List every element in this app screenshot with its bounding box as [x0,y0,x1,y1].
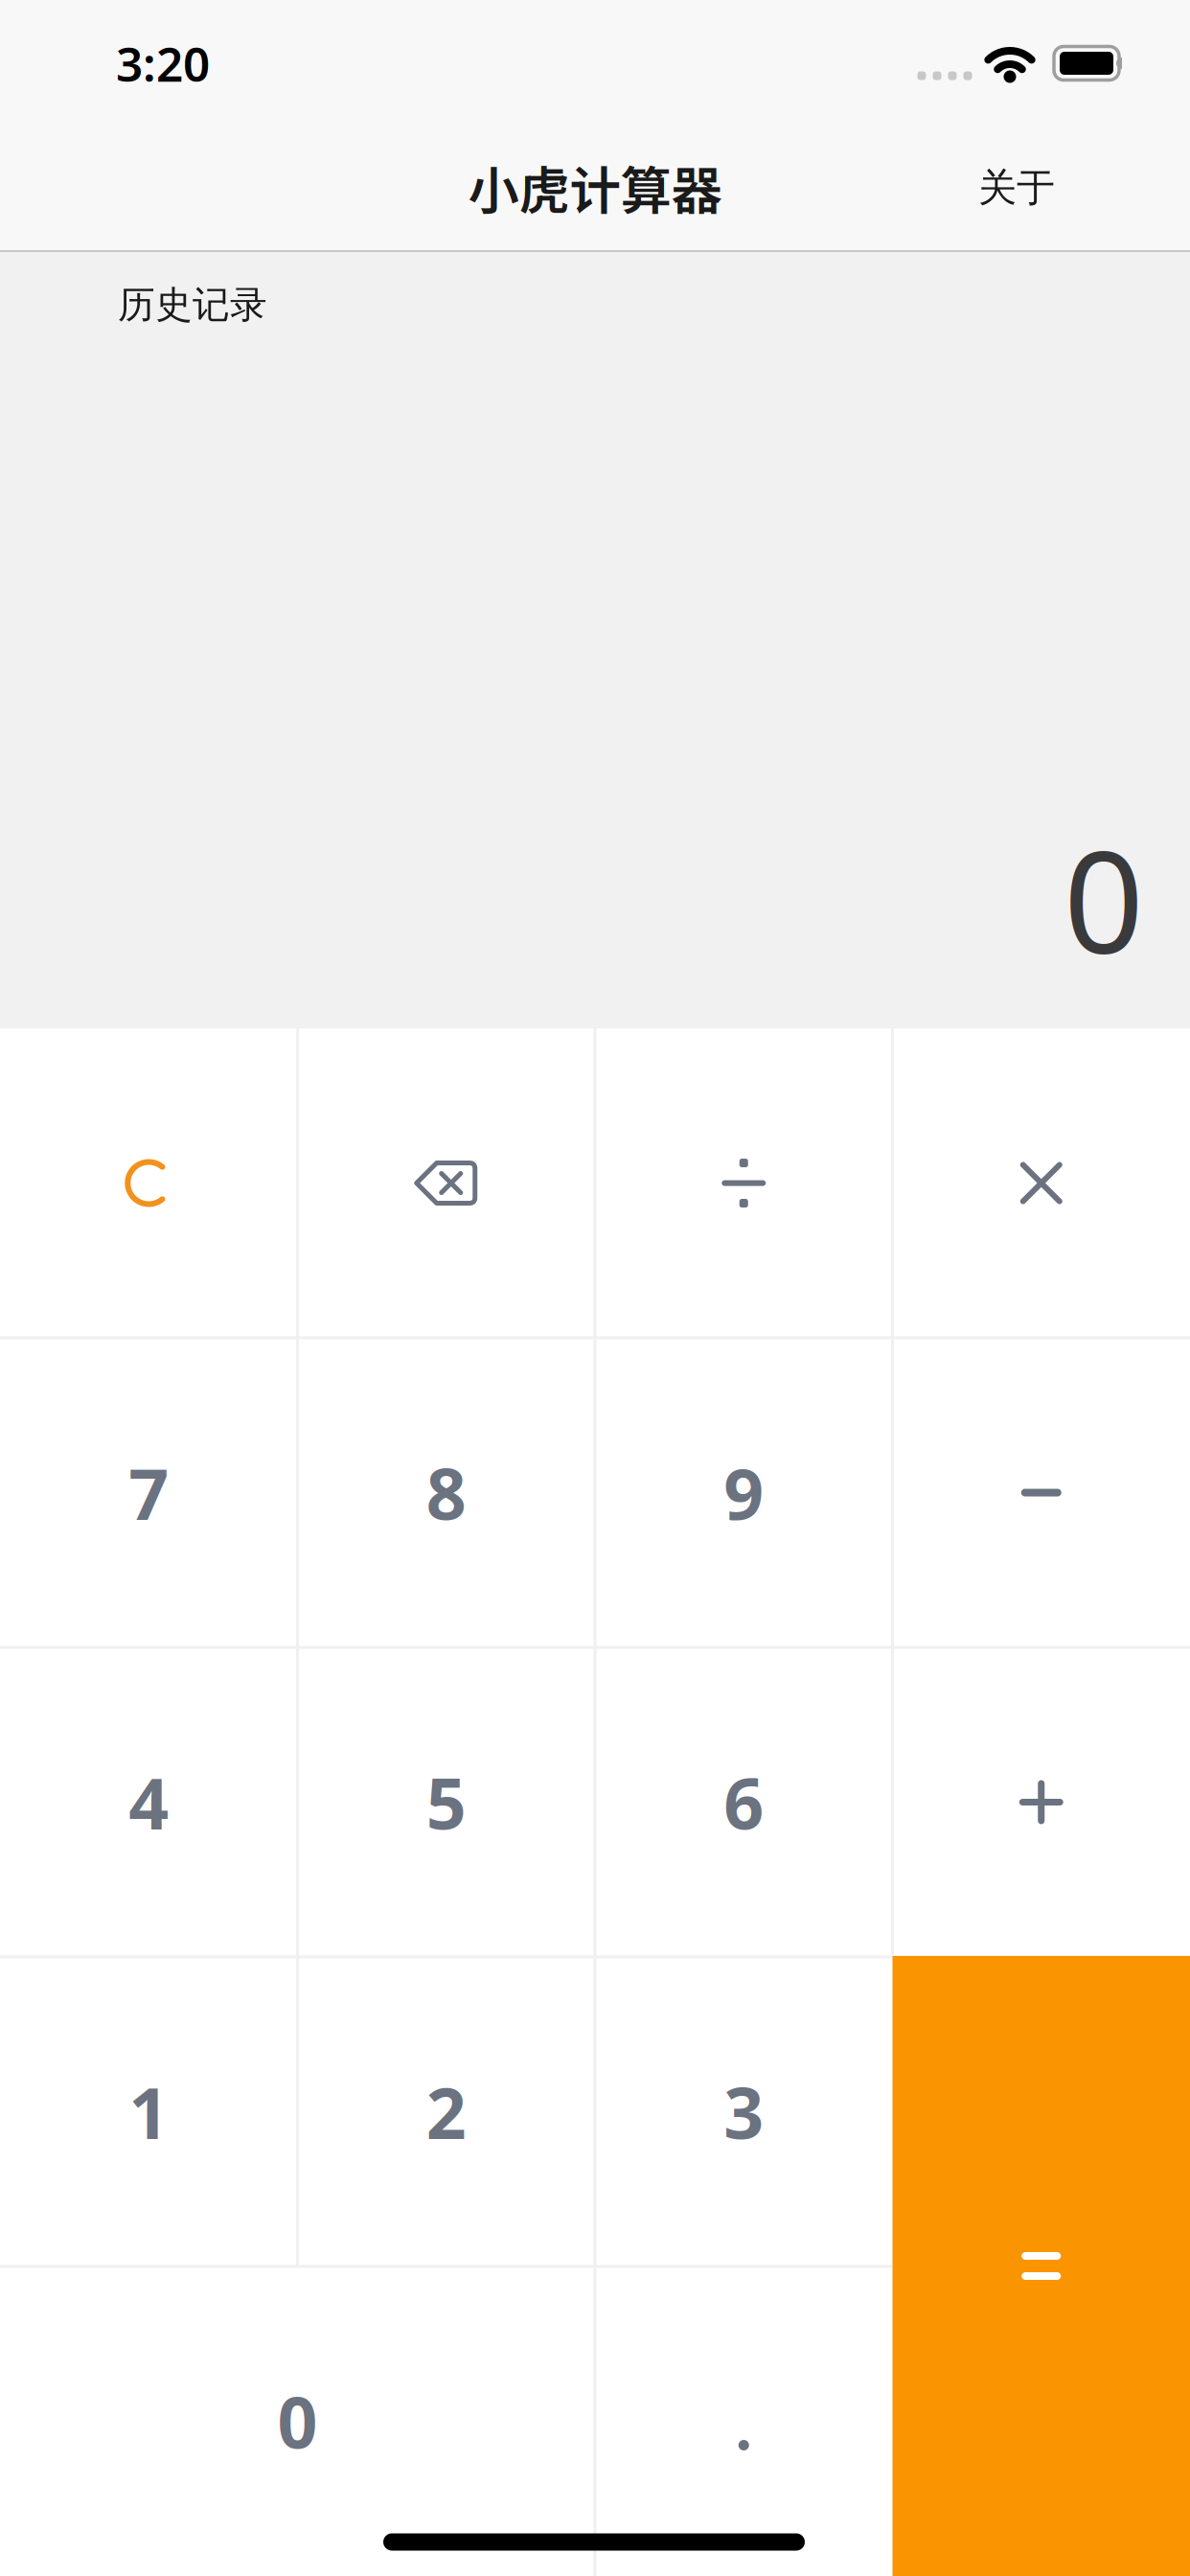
staticText: 1 [129,2065,169,2158]
button[interactable] [0,1028,297,1338]
staticText: 9 [724,1446,764,1539]
staticText: 8 [426,1446,466,1539]
staticText: 6 [724,1755,764,1849]
button[interactable]: 4 [0,1647,297,1957]
button[interactable] [297,1028,595,1338]
button[interactable] [892,1647,1190,1957]
staticText: 历史记录 [118,282,267,328]
button[interactable]: 2 [297,1957,595,2266]
button[interactable]: 5 [297,1647,595,1957]
button[interactable]: 8 [297,1338,595,1647]
button[interactable] [595,2266,892,2576]
button[interactable]: 7 [0,1338,297,1647]
button[interactable] [892,1028,1190,1338]
button[interactable] [892,1956,1190,2576]
staticText: 关于 [978,164,1055,211]
staticText: 5 [426,1755,466,1849]
staticText: 4 [129,1755,169,1849]
button[interactable]: 3 [595,1957,892,2266]
button[interactable]: 6 [595,1647,892,1957]
staticText: 2 [426,2065,466,2158]
button[interactable]: 关于 [940,140,1093,236]
button[interactable]: 9 [595,1338,892,1647]
staticText: 7 [129,1446,169,1539]
button[interactable]: 1 [0,1957,297,2266]
button[interactable]: 历史记录 [30,262,355,348]
button[interactable] [595,1028,892,1338]
staticText: 3 [724,2065,764,2158]
button[interactable] [892,1338,1190,1647]
staticText: 3:20 [116,32,210,95]
staticText: 0 [1064,806,1144,992]
staticText: 0 [277,2375,318,2468]
button[interactable]: 0 [0,2266,595,2576]
staticText: 小虎计算器 [468,150,722,224]
